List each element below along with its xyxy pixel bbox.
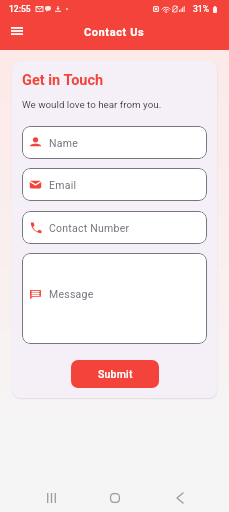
staticText: Email	[49, 179, 77, 191]
button[interactable]: Home	[103, 486, 127, 510]
staticText: 31%	[193, 4, 209, 14]
staticText: Contact Us	[84, 26, 145, 39]
button[interactable]: Submit	[71, 360, 159, 388]
button[interactable]: Email	[22, 168, 207, 201]
button[interactable]: Recent apps	[39, 486, 63, 510]
button[interactable]: Name	[22, 126, 207, 159]
staticText: Name	[49, 137, 78, 149]
staticText: We would love to hear from you.	[22, 99, 162, 110]
button[interactable]: Contact Number	[22, 211, 207, 244]
staticText: Message	[49, 288, 94, 300]
button[interactable]: Message	[22, 253, 207, 344]
staticText: 12:55	[9, 4, 31, 14]
staticText: Get in Touch	[22, 72, 104, 89]
staticText: Submit	[98, 368, 133, 380]
button[interactable]: Open navigation menu	[5, 19, 29, 43]
staticText: Contact Number	[49, 222, 130, 234]
button[interactable]: Back	[166, 486, 190, 510]
